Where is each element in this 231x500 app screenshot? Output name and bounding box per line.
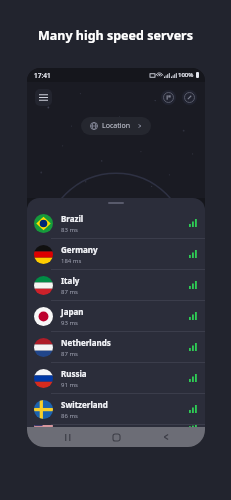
staticText: Russia <box>61 368 87 379</box>
button[interactable]: Speed test <box>161 90 176 105</box>
staticText: Many high speed servers <box>0 27 231 44</box>
button[interactable]: Germany <box>27 238 205 269</box>
button[interactable]: Location <box>81 117 151 135</box>
staticText: Italy <box>61 275 80 286</box>
button[interactable]: Brazil <box>27 208 205 238</box>
button[interactable]: Settings <box>182 90 197 105</box>
button[interactable]: Recents <box>57 427 77 447</box>
staticText: Japan <box>61 306 84 317</box>
button[interactable]: Italy <box>27 269 205 300</box>
staticText: Germany <box>61 244 98 255</box>
button[interactable]: Back <box>156 427 176 447</box>
staticText: 86 ms <box>61 412 78 420</box>
button[interactable]: Netherlands <box>27 331 205 362</box>
staticText: Location <box>102 121 131 131</box>
button[interactable]: Menu <box>35 89 52 106</box>
staticText: 184 ms <box>61 257 82 265</box>
staticText: 87 ms <box>61 350 78 358</box>
staticText: 17:41 <box>34 71 51 80</box>
staticText: Brazil <box>61 213 84 224</box>
staticText: 93 ms <box>61 319 78 327</box>
staticText: Switzerland <box>61 399 108 410</box>
staticText: Netherlands <box>61 337 111 348</box>
staticText: 100% <box>178 71 194 79</box>
button[interactable]: Home <box>106 427 126 447</box>
button[interactable]: Russia <box>27 362 205 393</box>
staticText: 83 ms <box>61 226 78 234</box>
button[interactable]: Japan <box>27 300 205 331</box>
button[interactable]: Switzerland <box>27 393 205 424</box>
staticText: 91 ms <box>61 381 78 389</box>
staticText: 87 ms <box>61 288 78 296</box>
button[interactable]: USA <box>27 424 205 427</box>
